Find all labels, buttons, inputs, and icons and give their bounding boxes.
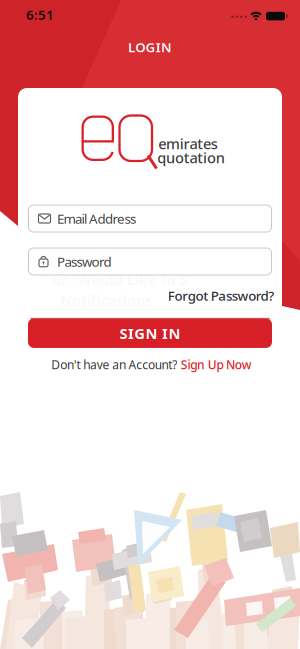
staticText: Email Address <box>57 210 136 227</box>
button[interactable]: Forgot Password? <box>168 287 274 304</box>
staticText: Sign Up Now <box>181 356 252 372</box>
staticText: Don't have an Account? <box>51 356 177 372</box>
button[interactable]: Email Address <box>28 204 272 232</box>
button[interactable]: Password <box>28 247 272 275</box>
staticText: SIGN IN <box>120 323 180 343</box>
staticText: Forgot Password? <box>168 287 274 304</box>
button[interactable]: Sign Up Now <box>181 356 252 372</box>
staticText: or “Would Like to S <box>52 269 187 289</box>
button[interactable]: SIGN IN <box>28 318 272 348</box>
staticText: LOGIN <box>128 38 172 56</box>
staticText: quotation <box>157 148 225 167</box>
staticText: emirates <box>158 134 218 153</box>
staticText: Password <box>57 253 111 270</box>
staticText: s “Emirates Quotation” <box>103 250 266 270</box>
staticText: 6:51 <box>26 6 54 23</box>
